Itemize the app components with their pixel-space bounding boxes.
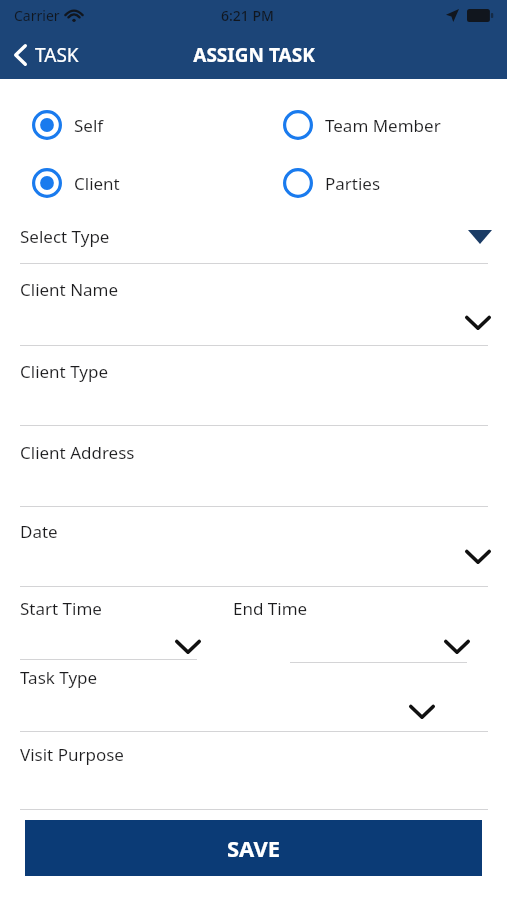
button[interactable]: Parties: [283, 161, 389, 205]
staticText: ASSIGN TASK: [193, 42, 315, 68]
other: Date picker: [465, 548, 491, 564]
staticText: Start Time: [20, 597, 102, 620]
button[interactable]: [20, 433, 488, 501]
staticText: Task Type: [20, 666, 98, 689]
other: Select Type dropdown: [468, 230, 492, 244]
staticText: Visit Purpose: [20, 743, 124, 766]
staticText: TASK: [35, 42, 79, 68]
button[interactable]: [20, 514, 488, 582]
button[interactable]: [20, 218, 488, 258]
other: Task Type dropdown: [409, 703, 435, 719]
other: Start time picker: [175, 638, 201, 654]
button[interactable]: Team Member: [283, 103, 449, 147]
button[interactable]: [20, 592, 198, 662]
staticText: Parties: [325, 172, 381, 195]
button[interactable]: [233, 592, 467, 664]
staticText: Client Type: [20, 360, 108, 383]
button[interactable]: [20, 352, 488, 420]
staticText: Team Member: [325, 114, 441, 137]
button[interactable]: Self: [32, 103, 112, 147]
staticText: SAVE: [227, 833, 281, 863]
other: Client Name dropdown: [465, 314, 491, 330]
staticText: Client: [74, 172, 120, 195]
button[interactable]: SAVE: [25, 820, 482, 876]
staticText: Client Address: [20, 441, 135, 464]
button[interactable]: [20, 738, 488, 806]
staticText: Self: [74, 114, 104, 137]
button[interactable]: [20, 272, 488, 340]
staticText: Date: [20, 520, 58, 543]
staticText: 6:21 PM: [221, 6, 274, 25]
staticText: End Time: [233, 597, 308, 620]
other: End time picker: [444, 638, 470, 654]
button[interactable]: TASK: [0, 30, 89, 79]
button[interactable]: [20, 666, 488, 730]
button[interactable]: Client: [32, 161, 128, 205]
staticText: Carrier: [14, 6, 60, 25]
staticText: Client Name: [20, 278, 119, 301]
staticText: Select Type: [20, 225, 110, 248]
